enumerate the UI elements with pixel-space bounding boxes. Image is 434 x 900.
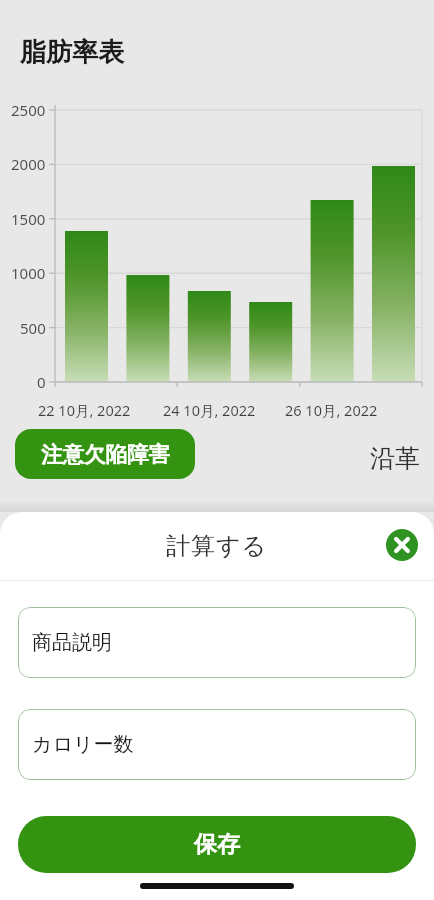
staticText: 26 10月, 2022: [285, 400, 378, 420]
button[interactable]: カロリー数: [18, 709, 416, 780]
staticText: 500: [20, 318, 46, 338]
staticText: 1500: [11, 209, 46, 229]
staticText: カロリー数: [32, 732, 134, 757]
staticText: 沿革: [370, 443, 420, 474]
staticText: 2500: [11, 100, 46, 120]
staticText: 計算する: [166, 531, 268, 561]
staticText: 2000: [11, 154, 46, 174]
staticText: 0: [37, 372, 46, 392]
button[interactable]: 商品説明: [18, 607, 416, 678]
button[interactable]: 注意欠陥障害: [15, 429, 195, 479]
staticText: 商品説明: [32, 630, 112, 655]
button[interactable]: 保存: [18, 816, 416, 873]
staticText: 22 10月, 2022: [38, 400, 131, 420]
staticText: 1000: [11, 263, 46, 283]
button[interactable]: [386, 529, 418, 561]
staticText: 保存: [194, 830, 240, 859]
staticText: 脂肪率表: [20, 36, 124, 69]
staticText: 注意欠陥障害: [41, 441, 170, 468]
staticText: 24 10月, 2022: [163, 400, 256, 420]
button[interactable]: 沿革: [300, 443, 420, 474]
